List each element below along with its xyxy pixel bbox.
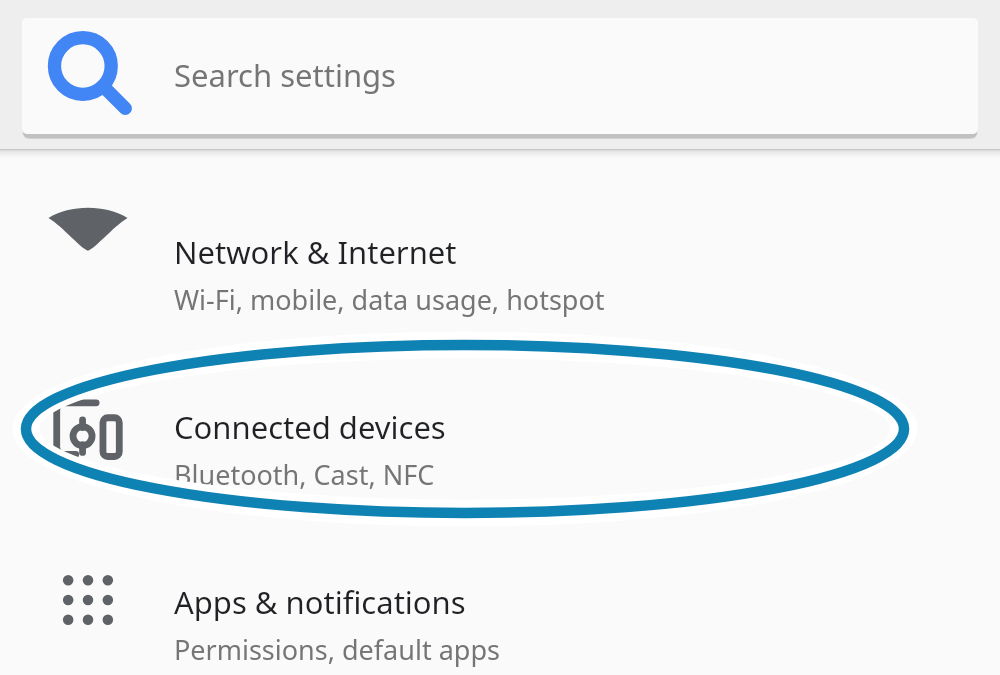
staticText: Bluetooth, Cast, NFC [174, 456, 435, 493]
staticText: Network & Internet [174, 231, 457, 273]
staticText: Wi-Fi, mobile, data usage, hotspot [174, 281, 605, 318]
staticText: Connected devices [174, 406, 446, 448]
button[interactable]: Connected devices [0, 344, 1000, 518]
button[interactable]: Apps & notifications [0, 519, 1000, 675]
staticText: Permissions, default apps [174, 631, 500, 668]
staticText: Apps & notifications [174, 581, 466, 623]
button[interactable]: Search settings [22, 18, 978, 134]
button[interactable]: Network & Internet [0, 169, 1000, 343]
staticText: Search settings [174, 54, 396, 96]
